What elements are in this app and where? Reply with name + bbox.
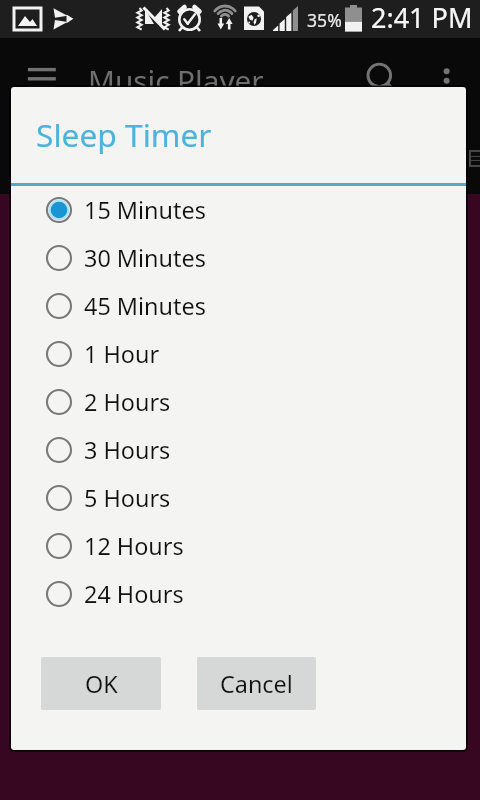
staticText: OK [85,668,118,700]
staticText: 3 Hours [84,434,171,466]
staticText: 45 Minutes [84,290,206,322]
staticText: 1 Hour [84,338,160,370]
button[interactable]: Cancel [197,657,316,710]
button[interactable]: 2 Hours [11,378,466,426]
staticText: 2 Hours [84,386,171,418]
button[interactable]: 3 Hours [11,426,466,474]
staticText: Sleep Timer [36,113,212,156]
button[interactable]: 12 Hours [11,522,466,570]
staticText: 15 Minutes [84,194,206,226]
staticText: Music Player [88,60,264,100]
staticText: 2:41 PM [371,0,473,36]
staticText: 24 Hours [84,578,184,610]
button[interactable]: More options [434,63,460,99]
staticText: 12 Hours [84,530,184,562]
staticText: Cancel [220,668,293,700]
button[interactable]: 24 Hours [11,570,466,618]
button[interactable]: 15 Minutes [11,186,466,234]
button[interactable]: Search [358,54,402,98]
button[interactable]: OK [41,657,161,710]
button[interactable]: 45 Minutes [11,282,466,330]
staticText: 5 Hours [84,482,171,514]
button[interactable]: Menu [22,60,62,90]
button[interactable]: 1 Hour [11,330,466,378]
staticText: 30 Minutes [84,242,206,274]
staticText: 35% [307,8,342,32]
button[interactable]: 5 Hours [11,474,466,522]
button[interactable]: 30 Minutes [11,234,466,282]
